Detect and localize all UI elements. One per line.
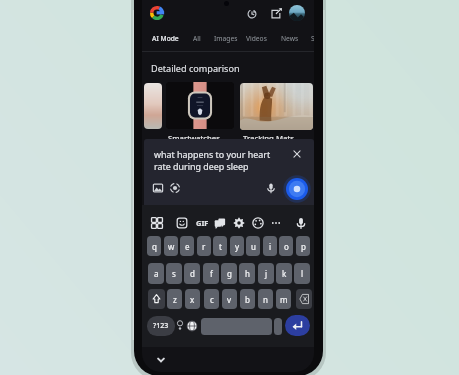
- staticText: AI Mode: [152, 34, 179, 43]
- button[interactable]: Google: [148, 4, 166, 22]
- button[interactable]: S: [307, 30, 314, 47]
- staticText: Smartwatches: [168, 133, 220, 144]
- button[interactable]: Hide keyboard: [155, 355, 167, 365]
- button[interactable]: More: [268, 215, 284, 231]
- button[interactable]: h: [239, 263, 255, 284]
- staticText: S: [311, 34, 314, 43]
- staticText: All: [193, 34, 201, 43]
- button[interactable]: [240, 83, 313, 130]
- button[interactable]: v: [222, 289, 237, 309]
- staticText: s: [172, 268, 176, 279]
- button[interactable]: s: [166, 263, 182, 284]
- staticText: what happens to your heart: [154, 148, 271, 160]
- staticText: c: [210, 294, 214, 305]
- staticText: rate during deep sleep: [154, 160, 249, 172]
- button[interactable]: ?123: [147, 316, 175, 336]
- staticText: y: [235, 241, 240, 252]
- button[interactable]: GIF: [194, 215, 210, 231]
- button[interactable]: Space: [201, 318, 272, 335]
- staticText: f: [210, 268, 213, 279]
- button[interactable]: Settings: [231, 215, 247, 231]
- button[interactable]: Search history: [244, 6, 260, 22]
- staticText: e: [185, 241, 190, 252]
- button[interactable]: Gallery: [151, 181, 165, 195]
- button[interactable]: Change language: [186, 320, 198, 332]
- button[interactable]: q: [147, 236, 161, 256]
- button[interactable]: w: [164, 236, 178, 256]
- staticText: Tracking Mats: [243, 133, 294, 144]
- staticText: o: [284, 241, 289, 252]
- button[interactable]: g: [221, 263, 237, 284]
- button[interactable]: Voice search: [264, 181, 278, 195]
- button[interactable]: All: [186, 30, 207, 47]
- staticText: g: [227, 268, 232, 279]
- button[interactable]: Google Lens: [168, 181, 182, 195]
- button[interactable]: c: [204, 289, 219, 309]
- staticText: z: [173, 294, 177, 305]
- staticText: j: [265, 268, 268, 279]
- button[interactable]: Stickers: [174, 215, 190, 231]
- staticText: w: [168, 241, 175, 252]
- staticText: ?123: [153, 321, 169, 331]
- button[interactable]: u: [246, 236, 260, 256]
- button[interactable]: b: [240, 289, 255, 309]
- staticText: r: [202, 241, 206, 252]
- staticText: k: [282, 268, 287, 279]
- button[interactable]: r: [197, 236, 211, 256]
- button[interactable]: New chat: [268, 6, 284, 22]
- staticText: t: [219, 241, 222, 252]
- button[interactable]: Translate: [212, 215, 228, 231]
- button[interactable]: j: [258, 263, 274, 284]
- button[interactable]: a: [148, 263, 164, 284]
- staticText: d: [190, 268, 195, 279]
- staticText: a: [154, 268, 159, 279]
- button[interactable]: Images: [209, 30, 242, 47]
- button[interactable]: Keyboard modes: [149, 215, 165, 231]
- staticText: b: [245, 294, 250, 305]
- button[interactable]: e: [180, 236, 194, 256]
- staticText: Images: [214, 34, 238, 43]
- button[interactable]: t: [213, 236, 227, 256]
- button[interactable]: Emoji: [175, 320, 185, 333]
- button[interactable]: l: [294, 263, 310, 284]
- button[interactable]: Send: [286, 178, 308, 200]
- staticText: m: [280, 294, 288, 305]
- button[interactable]: Voice input: [293, 215, 309, 231]
- button[interactable]: Period: [274, 318, 282, 335]
- staticText: GIF: [196, 218, 209, 228]
- staticText: h: [245, 268, 250, 279]
- button[interactable]: Themes: [250, 215, 266, 231]
- staticText: News: [281, 34, 299, 43]
- staticText: q: [152, 241, 157, 252]
- staticText: Videos: [246, 34, 267, 43]
- staticText: Detailed comparison: [151, 62, 240, 74]
- button[interactable]: m: [276, 289, 291, 309]
- button[interactable]: AI Mode: [147, 30, 184, 47]
- button[interactable]: y: [230, 236, 244, 256]
- button[interactable]: d: [184, 263, 200, 284]
- button[interactable]: News: [277, 30, 302, 47]
- staticText: u: [251, 241, 256, 252]
- button[interactable]: [166, 82, 234, 129]
- staticText: l: [301, 268, 304, 279]
- button[interactable]: Shift: [148, 289, 165, 309]
- staticText: p: [301, 241, 306, 252]
- button[interactable]: k: [276, 263, 292, 284]
- button[interactable]: Enter: [285, 315, 310, 336]
- staticText: v: [227, 294, 232, 305]
- button[interactable]: Account: [289, 5, 305, 21]
- button[interactable]: Clear: [290, 147, 304, 161]
- button[interactable]: p: [296, 236, 310, 256]
- staticText: x: [190, 294, 195, 305]
- button[interactable]: i: [263, 236, 277, 256]
- button[interactable]: x: [185, 289, 200, 309]
- button[interactable]: [144, 83, 162, 129]
- staticText: n: [263, 294, 268, 305]
- button[interactable]: Backspace: [296, 289, 312, 309]
- staticText: i: [269, 241, 272, 252]
- button[interactable]: z: [167, 289, 182, 309]
- button[interactable]: Videos: [240, 30, 273, 47]
- button[interactable]: o: [279, 236, 293, 256]
- button[interactable]: f: [203, 263, 219, 284]
- button[interactable]: n: [258, 289, 273, 309]
